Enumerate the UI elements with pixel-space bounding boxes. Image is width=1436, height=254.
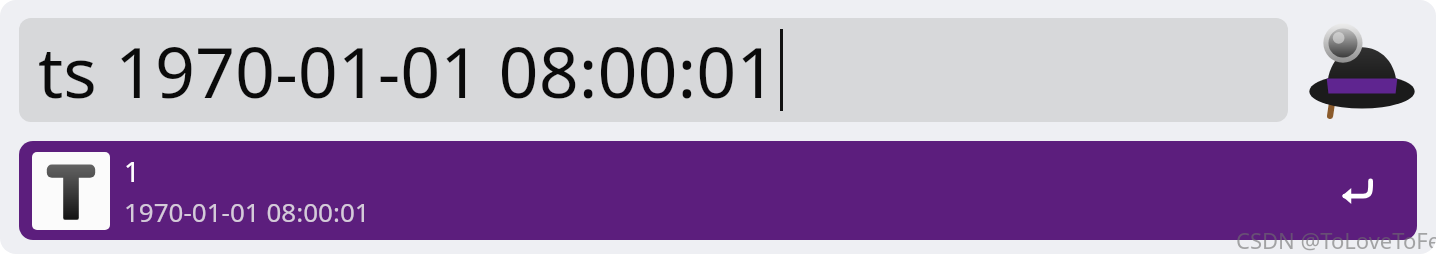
button[interactable]: Alfred: [1306, 16, 1418, 120]
button[interactable]: Enter: [1337, 170, 1379, 212]
staticText: CSDN @ToLoveToFeel: [1236, 225, 1436, 251]
staticText: ts 1970-01-01 08:00:01: [38, 23, 777, 118]
staticText: 1970-01-01 08:00:01: [124, 194, 370, 229]
button[interactable]: ts 1970-01-01 08:00:01: [19, 18, 1288, 122]
staticText: 1: [124, 152, 141, 190]
button[interactable]: 1: [19, 141, 1417, 240]
